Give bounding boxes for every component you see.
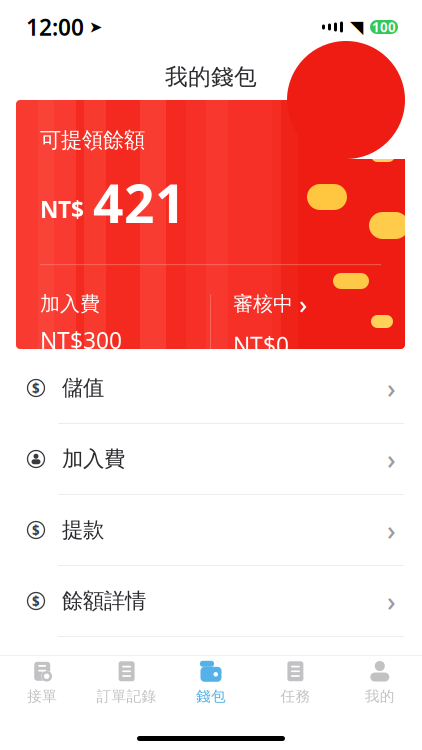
staticText: 接單 [27,687,57,705]
staticText: 錢包 [196,687,226,705]
staticText: › [387,583,396,619]
button[interactable]: 我的 [338,656,422,710]
button[interactable]: 訂單記錄 [84,656,169,710]
staticText: ➤ [89,18,102,36]
staticText: › [387,370,396,406]
staticText: 訂單記錄 [97,687,157,705]
button[interactable]: 接單 [0,656,84,710]
staticText: › [387,512,396,548]
staticText: NT$0 [233,330,289,360]
staticText: $ [32,592,40,610]
staticText: 審核中 [233,292,293,316]
staticText: $ [32,379,40,397]
staticText: 餘額詳情 [62,588,146,614]
staticText: 提款 [62,517,104,543]
button[interactable]: $ [0,495,422,565]
button[interactable]: 錢包 [169,656,253,710]
staticText: 加入費 [40,292,100,316]
staticText: › [299,287,307,321]
staticText: 任務 [280,687,310,705]
staticText: 我的 [365,687,395,705]
button[interactable]: 任務 [253,656,338,710]
staticText: 我的錢包 [165,63,257,91]
staticText: 100 [372,18,396,36]
button[interactable]: 加入費 [0,424,422,494]
staticText: NT$ [40,194,84,224]
staticText: › [387,441,396,477]
button[interactable]: $ [0,353,422,423]
staticText: 421 [93,167,186,238]
button[interactable]: 審核中 [211,287,361,360]
staticText: $ [32,521,40,539]
button[interactable]: $ [0,566,422,636]
staticText: 12:00 [26,12,84,42]
staticText: ◥ [350,17,363,37]
staticText: NT$300 [40,325,122,355]
staticText: 可提領餘額 [40,127,145,153]
staticText: 加入費 [62,446,125,472]
staticText: 儲值 [62,375,104,401]
